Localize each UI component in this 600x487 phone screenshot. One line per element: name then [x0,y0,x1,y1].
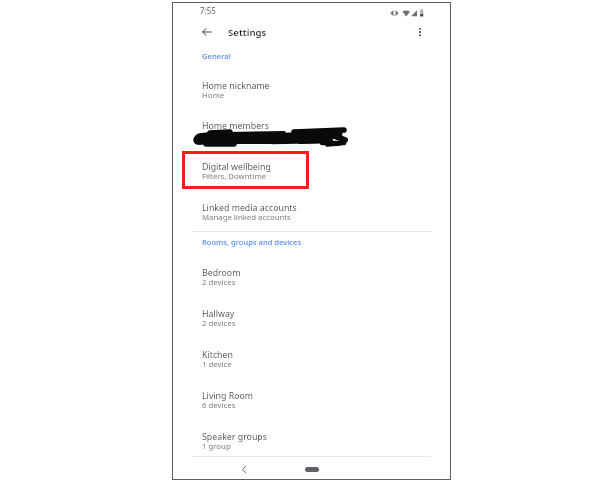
button[interactable]: Bedroom [172,264,451,298]
staticText: Rooms, groups and devices [202,237,302,247]
staticText: 6 devices [202,400,236,411]
button[interactable]: Home members [172,117,451,151]
staticText: Filters, Downtime [202,171,267,182]
staticText: 2 devices [202,277,236,288]
staticText: Bedroom [202,267,241,279]
button[interactable]: More options [408,20,432,44]
button[interactable]: Back [232,459,256,480]
staticText: Manage linked accounts [202,212,291,223]
staticText: 1 group [202,441,231,452]
staticText: Living Room [202,390,254,402]
staticText: Home [202,90,225,101]
button[interactable]: Back [195,20,219,44]
staticText: Digital wellbeing [202,161,271,173]
staticText: Kitchen [202,349,233,361]
button[interactable]: Living Room [172,387,451,421]
staticText: 7:55 [200,5,216,16]
staticText: Home members [202,120,269,132]
button[interactable]: Hallway [172,305,451,339]
staticText: 1 device [202,359,232,370]
staticText: Home nickname [202,80,270,92]
staticText: Speaker groups [202,431,267,443]
staticText: General [202,51,231,61]
staticText: Hallway [202,308,235,320]
button[interactable]: Digital wellbeing [172,158,451,192]
button[interactable]: Linked media accounts [172,199,451,233]
staticText: Linked media accounts [202,202,297,214]
button[interactable]: Home nickname [172,77,451,111]
staticText: 2 devices [202,318,236,329]
button[interactable]: Speaker groups [172,428,451,462]
staticText: Settings [228,26,267,39]
button[interactable]: Home [305,467,319,472]
button[interactable]: Kitchen [172,346,451,380]
